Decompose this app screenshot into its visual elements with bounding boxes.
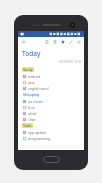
button[interactable]: Share xyxy=(75,38,82,45)
button[interactable]: Delete xyxy=(51,38,58,45)
staticText: chair xyxy=(28,117,36,122)
button[interactable]: chair xyxy=(22,116,81,122)
button[interactable]: java xyxy=(22,79,81,85)
staticText: Today xyxy=(22,49,41,58)
staticText: programming xyxy=(28,136,51,141)
button[interactable]: app update xyxy=(22,129,81,135)
staticText: 2017/03/26 17:32 xyxy=(22,60,81,64)
staticText: Todo xyxy=(23,123,32,128)
button[interactable]: programming xyxy=(22,135,81,141)
staticText: ice cream xyxy=(28,99,44,104)
staticText: android xyxy=(28,74,41,79)
staticText: salad xyxy=(28,111,37,116)
staticText: fruit xyxy=(28,105,35,110)
button[interactable]: ice cream xyxy=(22,98,81,104)
staticText: Shopping xyxy=(23,92,40,97)
button[interactable]: english word xyxy=(22,85,81,91)
staticText: english word xyxy=(28,86,49,91)
button[interactable]: Back xyxy=(20,38,27,45)
button[interactable]: Favorite xyxy=(59,38,66,45)
button[interactable]: android xyxy=(22,73,81,79)
staticText: Study xyxy=(23,67,33,72)
staticText: java xyxy=(28,80,35,85)
button[interactable]: fruit xyxy=(22,104,81,110)
button[interactable]: salad xyxy=(22,110,81,116)
button[interactable]: Home xyxy=(43,156,60,163)
button[interactable]: Copy xyxy=(43,38,50,45)
button[interactable]: Edit xyxy=(67,38,74,45)
staticText: app update xyxy=(28,130,47,135)
